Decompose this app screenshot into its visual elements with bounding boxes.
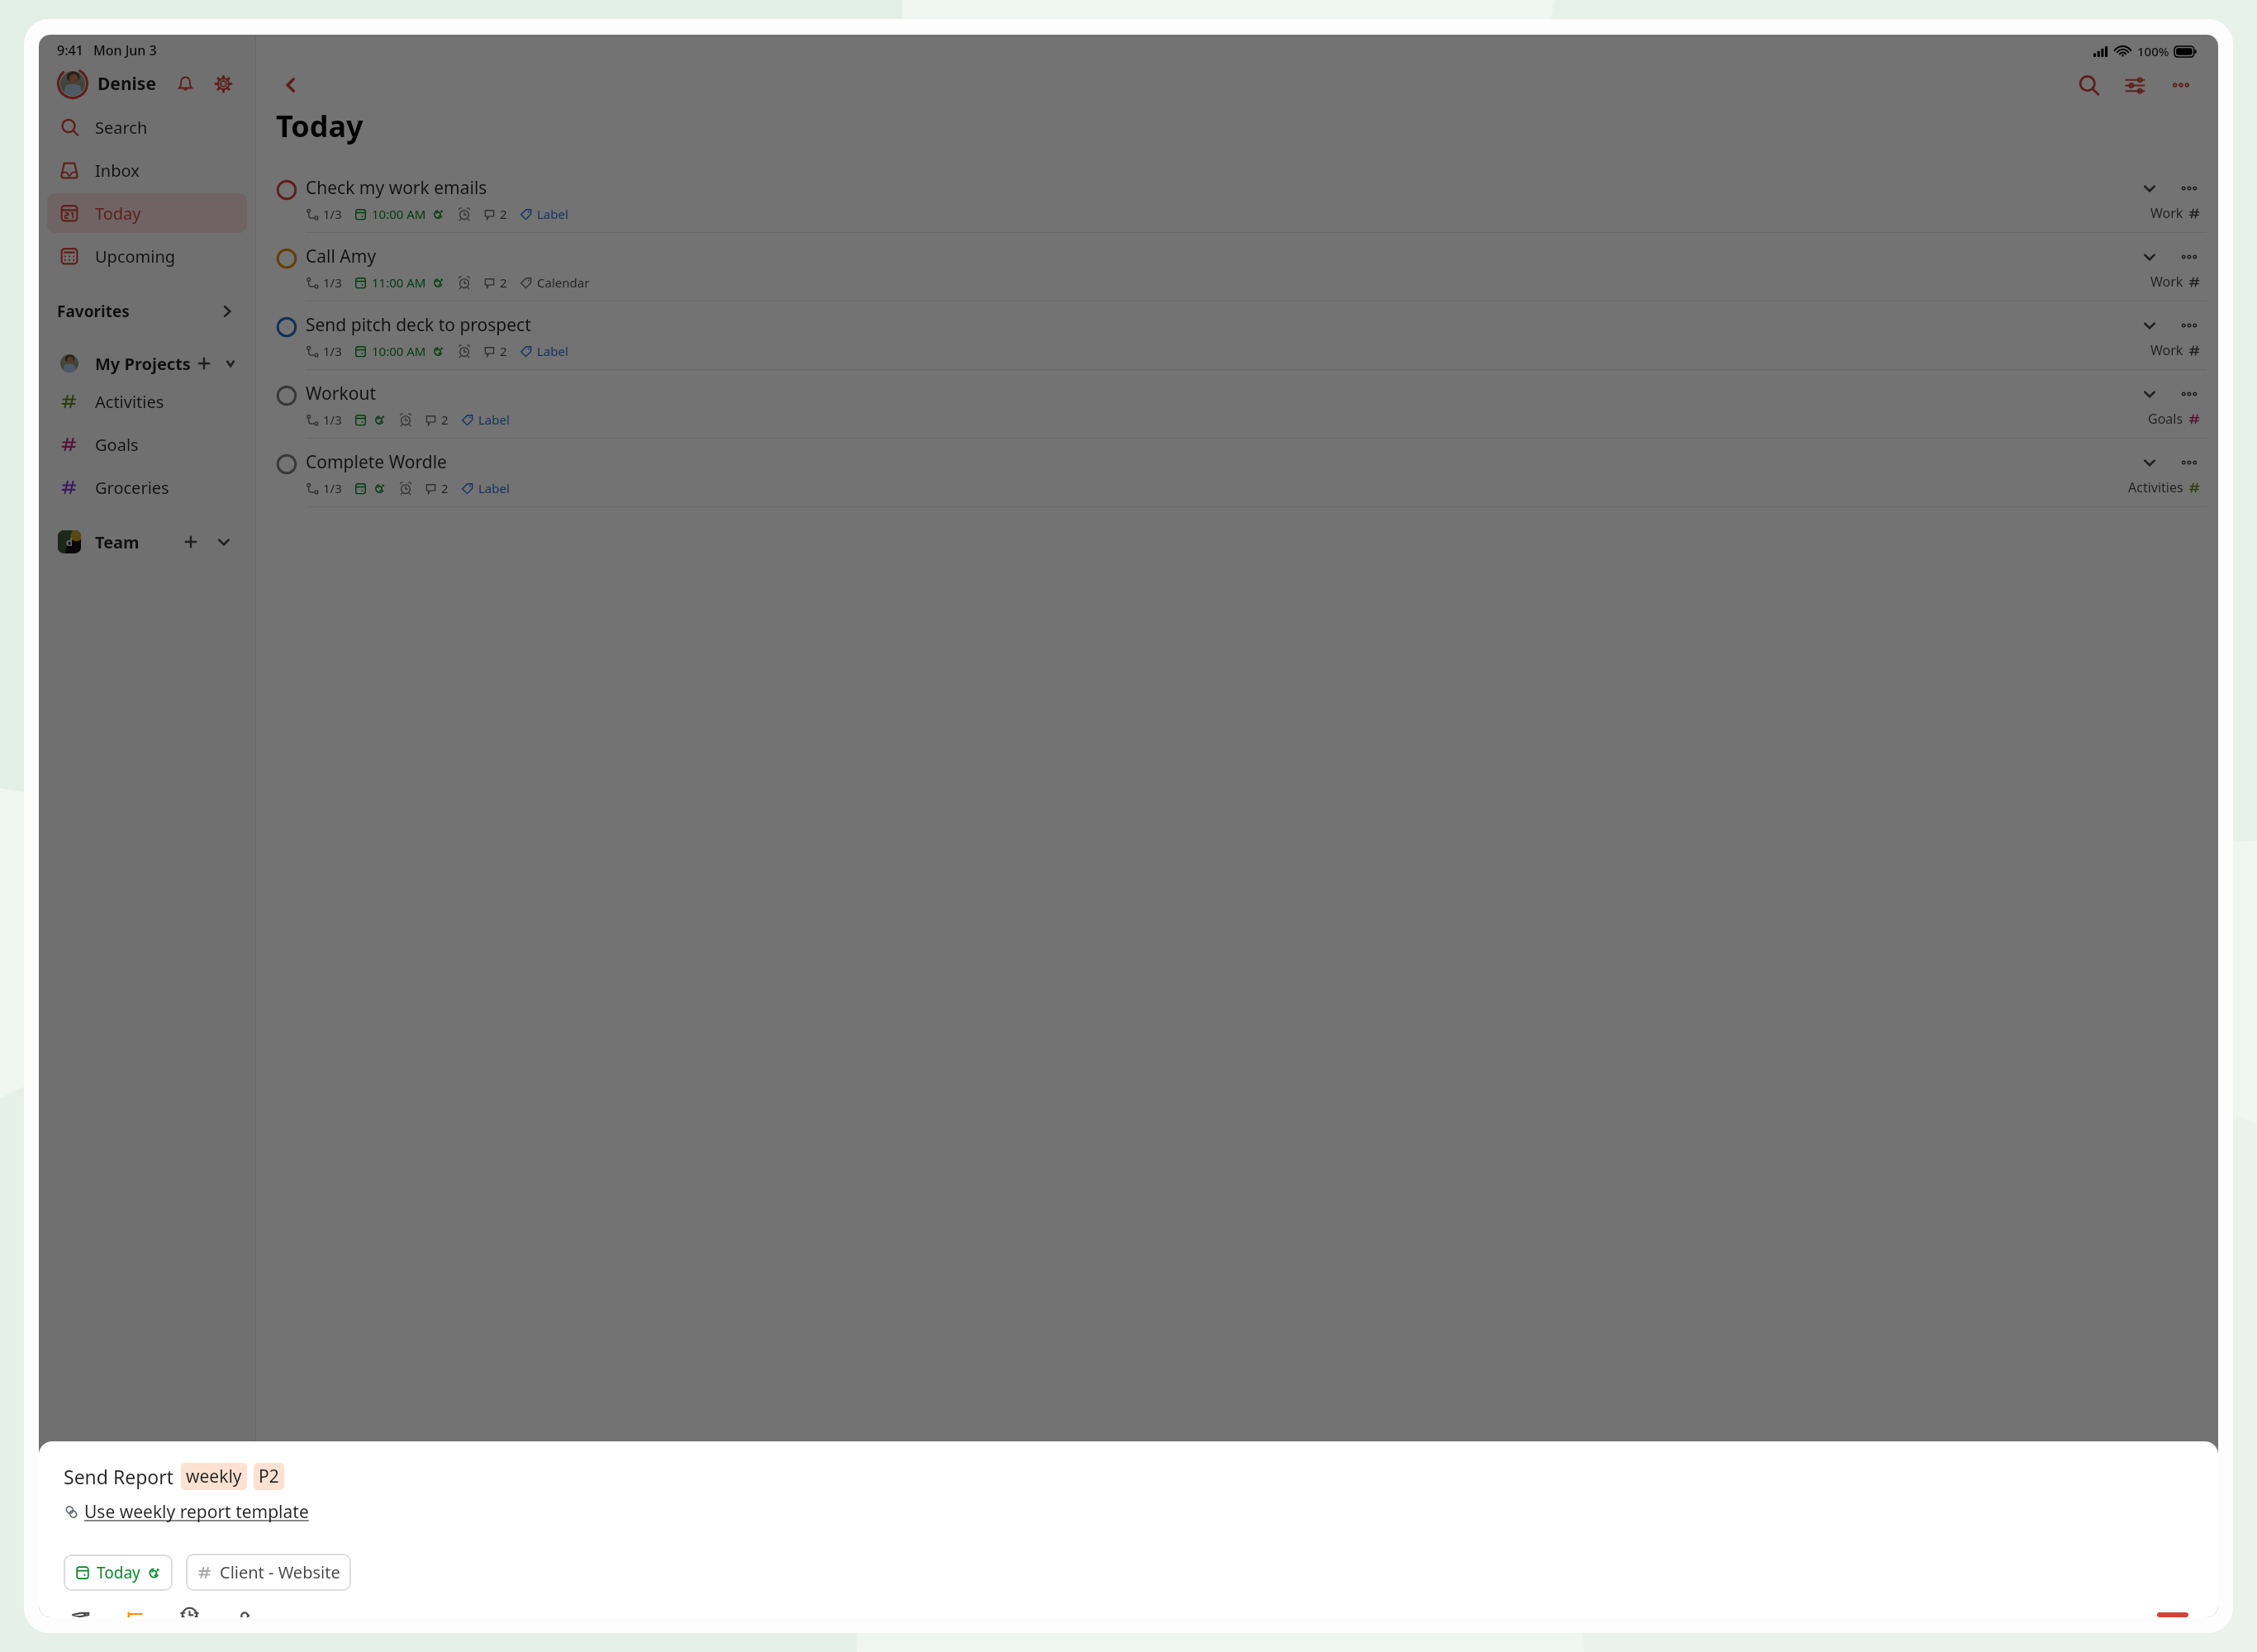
button[interactable]: Upcoming [47,236,247,276]
staticText: 2 [500,343,507,359]
button[interactable]: Add task [2157,1612,2188,1617]
button[interactable]: Filter and sort [2117,68,2152,102]
staticText: P2 [259,1464,279,1488]
staticText: Goals [95,434,139,456]
button[interactable]: My Projects [57,350,237,377]
staticText: Call Amy [306,244,377,268]
staticText: Today [276,106,363,146]
staticText: Client - Website [220,1561,340,1583]
button[interactable]: More options [2177,382,2202,406]
button[interactable]: Today [47,193,247,233]
staticText: 2 [500,274,507,291]
staticText: Label [478,411,510,428]
staticText: 2 [441,480,449,496]
staticText: Search [95,116,148,139]
staticText: Activities [95,391,164,413]
staticText: 10:00 AM [372,206,426,222]
button[interactable]: Expand subtasks [2137,176,2162,201]
staticText: Groceries [95,477,169,499]
staticText: 2 [500,206,507,222]
button[interactable]: Notifications [171,69,199,97]
button[interactable]: Settings [209,69,237,97]
button[interactable]: Collapse Team [211,529,237,555]
button[interactable]: Expand subtasks [2137,244,2162,269]
button[interactable]: Today [64,1555,173,1591]
button[interactable]: Goals [47,425,247,464]
staticText: Label [478,480,510,496]
button[interactable]: Complete Workout [274,370,2207,439]
staticText: Today [97,1562,140,1583]
button[interactable]: Denise [57,68,237,99]
button[interactable]: Activities [47,382,247,421]
staticText: Today [95,202,141,225]
staticText: Calendar [537,274,590,291]
button[interactable]: Expand subtasks [2137,313,2162,338]
staticText: 2 [441,411,449,428]
button[interactable]: Favorites [57,301,237,322]
button[interactable]: More options [2164,68,2198,102]
staticText: 10:00 AM [372,343,426,359]
button[interactable]: Complete Call Amy [274,233,2207,301]
button[interactable]: Client - Website [186,1554,351,1591]
button[interactable]: Complete Workout [274,383,299,408]
button[interactable]: Add team project [178,529,204,555]
staticText: 1/3 [323,480,342,496]
staticText: Use weekly report template [84,1500,309,1524]
staticText: 1/3 [323,343,342,359]
staticText: Label [537,206,568,222]
button[interactable]: Back [274,69,307,102]
staticText: Label [537,343,568,359]
button[interactable]: Complete Complete Wordle [274,439,2207,507]
staticText: 1/3 [323,274,342,291]
button[interactable]: Search [47,107,247,147]
staticText: Send Report [64,1464,174,1489]
button[interactable]: Complete Check my work emails [274,164,2207,233]
staticText: Mon Jun 3 [93,41,157,59]
button[interactable]: Set reminder [171,1612,207,1617]
button[interactable]: Search [2071,68,2106,102]
button[interactable]: Complete Call Amy [274,246,299,271]
button[interactable]: d [57,529,237,555]
button[interactable]: More options [2177,450,2202,475]
button[interactable]: Complete Check my work emails [274,178,299,202]
button[interactable]: Attach file [226,1612,262,1617]
staticText: 1/3 [323,206,342,222]
staticText: Workout [306,382,376,406]
button[interactable]: Complete Send pitch deck to prospect [274,315,299,339]
staticText: Denise [97,72,156,96]
button[interactable]: More options [2177,176,2202,201]
button[interactable]: Groceries [47,468,247,507]
staticText: Upcoming [95,245,176,268]
staticText: 100% [2137,43,2169,59]
staticText: Complete Wordle [306,450,447,474]
staticText: Work [2150,273,2183,291]
staticText: My Projects [95,353,191,375]
staticText: Send pitch deck to prospect [306,313,531,337]
button[interactable]: Expand subtasks [2137,382,2162,406]
staticText: 11:00 AM [372,274,426,291]
staticText: Inbox [95,159,140,182]
staticText: 1/3 [323,411,342,428]
button[interactable]: Add project [191,350,217,377]
button[interactable]: More options [2177,244,2202,269]
button[interactable]: Add label [62,1612,98,1617]
button[interactable]: Complete Send pitch deck to prospect [274,301,2207,370]
staticText: Team [95,531,140,553]
staticText: Check my work emails [306,176,487,200]
button[interactable]: Set priority [116,1612,153,1617]
button[interactable]: Expand subtasks [2137,450,2162,475]
staticText: d [66,534,73,549]
button[interactable]: More options [2177,313,2202,338]
staticText: Favorites [57,301,130,322]
button[interactable]: Collapse My Projects [224,350,237,377]
staticText: Work [2150,341,2183,359]
button[interactable]: Inbox [47,150,247,190]
staticText: weekly [186,1464,242,1488]
staticText: 9:41 [57,41,83,59]
staticText: Goals [2148,410,2183,428]
button[interactable]: Use weekly report template [64,1500,309,1524]
staticText: Activities [2128,478,2183,496]
staticText: Work [2150,204,2183,222]
button[interactable]: Complete Complete Wordle [274,452,299,477]
